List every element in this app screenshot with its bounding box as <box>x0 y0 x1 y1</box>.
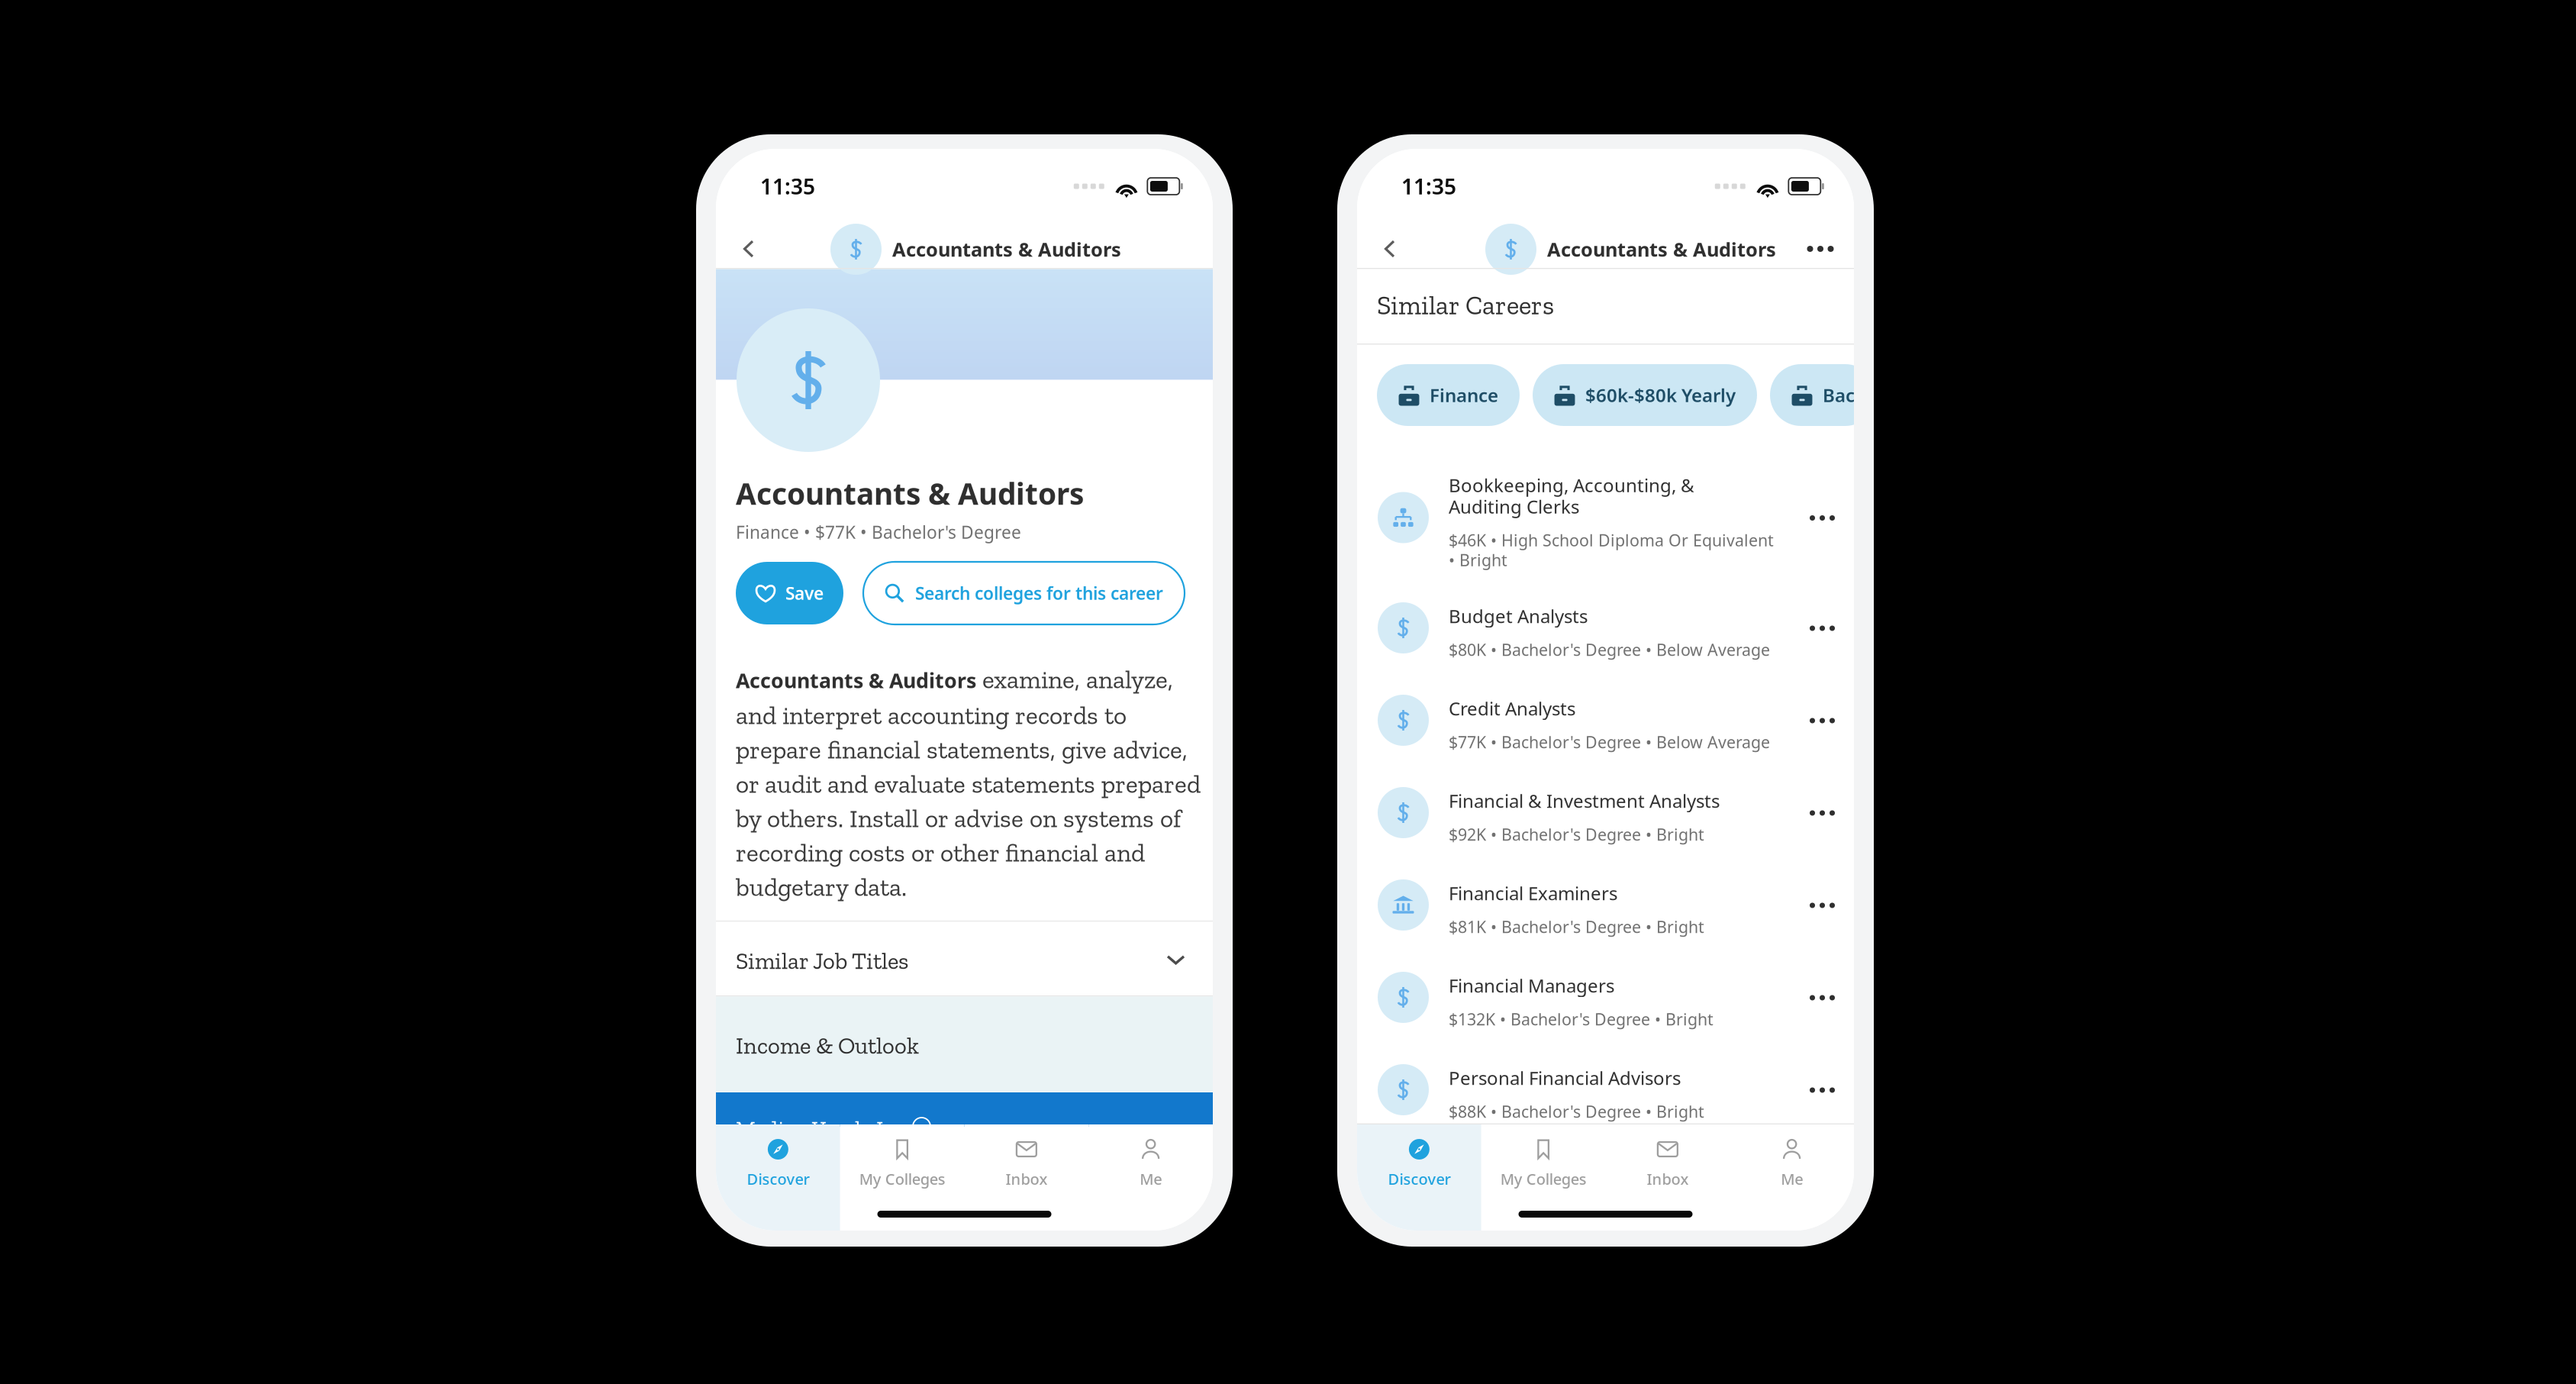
staticText: Similar Careers <box>1377 289 1554 321</box>
staticText: Income & Outlook <box>736 1032 919 1060</box>
button[interactable]: Bookkeeping, Accounting, & <box>1357 453 1854 582</box>
staticText: Inbox <box>1647 1169 1689 1189</box>
button[interactable]: Save <box>736 562 843 624</box>
staticText: Budget Analysts <box>1449 604 1588 628</box>
button[interactable]: $60k-$80k Yearly <box>1533 364 1757 426</box>
button[interactable]: Me <box>1730 1124 1854 1231</box>
staticText: $132K • Bachelor's Degree • Bright <box>1449 1008 1714 1030</box>
staticText: Bac <box>1823 383 1855 407</box>
button[interactable]: Personal Financial Advisors <box>1357 1044 1854 1136</box>
staticText: Bookkeeping, Accounting, & <box>1449 473 1694 497</box>
staticText: and interpret accounting records to prep… <box>736 700 1201 902</box>
button[interactable]: Credit Analysts <box>1357 674 1854 766</box>
staticText: Inbox <box>1006 1169 1047 1189</box>
staticText: Similar Job Titles <box>736 947 908 975</box>
staticText: Accountants & Auditors <box>892 236 1121 262</box>
staticText: Accountants & Auditors <box>736 667 976 694</box>
staticText: Search colleges for this career <box>915 582 1163 605</box>
button[interactable]: Financial Managers <box>1357 951 1854 1044</box>
staticText: $92K • Bachelor's Degree • Bright <box>1449 824 1704 845</box>
staticText: Discover <box>1388 1169 1450 1189</box>
button[interactable]: Discover <box>716 1124 840 1231</box>
button[interactable]: More options <box>1797 219 1843 279</box>
staticText: Me <box>1140 1169 1162 1189</box>
staticText: My Colleges <box>859 1169 945 1189</box>
staticText: Accountants & Auditors <box>736 473 1084 514</box>
button[interactable]: Search colleges for this career <box>863 562 1185 624</box>
button[interactable]: Bac <box>1770 364 1876 426</box>
staticText: $46K • High School Diploma Or Equivalent <box>1449 529 1774 551</box>
button[interactable]: Financial Examiners <box>1357 859 1854 951</box>
button[interactable]: Budget Analysts <box>1357 582 1854 674</box>
staticText: $81K • Bachelor's Degree • Bright <box>1449 916 1704 938</box>
staticText: • Bright <box>1449 549 1507 571</box>
button[interactable]: Discover <box>1357 1124 1481 1231</box>
staticText: Me <box>1781 1169 1803 1189</box>
button[interactable]: My Colleges <box>1481 1124 1606 1231</box>
staticText: Financial & Investment Analysts <box>1449 789 1720 813</box>
staticText: 11:35 <box>760 172 815 200</box>
button[interactable]: Inbox <box>1606 1124 1730 1231</box>
button[interactable]: Similar Job Titles <box>716 922 1213 995</box>
button[interactable]: Inbox <box>964 1124 1089 1231</box>
staticText: $80K • Bachelor's Degree • Below Average <box>1449 639 1770 660</box>
staticText: Personal Financial Advisors <box>1449 1066 1681 1090</box>
button[interactable]: Me <box>1089 1124 1213 1231</box>
staticText: $88K • Bachelor's Degree • Bright <box>1449 1101 1704 1122</box>
staticText: Discover <box>747 1169 809 1189</box>
staticText: Financial Managers <box>1449 973 1614 998</box>
staticText: $60k-$80k Yearly <box>1585 383 1736 407</box>
staticText: Auditing Clerks <box>1449 494 1579 519</box>
staticText: $77K • Bachelor's Degree • Below Average <box>1449 731 1770 753</box>
staticText: examine, analyze, <box>976 664 1173 695</box>
staticText: My Colleges <box>1500 1169 1587 1189</box>
staticText: Financial Examiners <box>1449 881 1617 905</box>
staticText: Credit Analysts <box>1449 696 1575 721</box>
button[interactable]: My Colleges <box>840 1124 964 1231</box>
staticText: Save <box>785 582 824 605</box>
button[interactable]: Back <box>1368 219 1412 279</box>
button[interactable]: Finance <box>1377 364 1520 426</box>
staticText: 11:35 <box>1401 172 1456 200</box>
staticText: Accountants & Auditors <box>1547 236 1776 262</box>
button[interactable]: Financial & Investment Analysts <box>1357 766 1854 859</box>
staticText: Median Yearly Income <box>736 1115 948 1142</box>
staticText: Finance <box>1430 383 1498 407</box>
staticText: Finance • $77K • Bachelor's Degree <box>736 521 1021 544</box>
button[interactable]: Back <box>727 219 771 279</box>
